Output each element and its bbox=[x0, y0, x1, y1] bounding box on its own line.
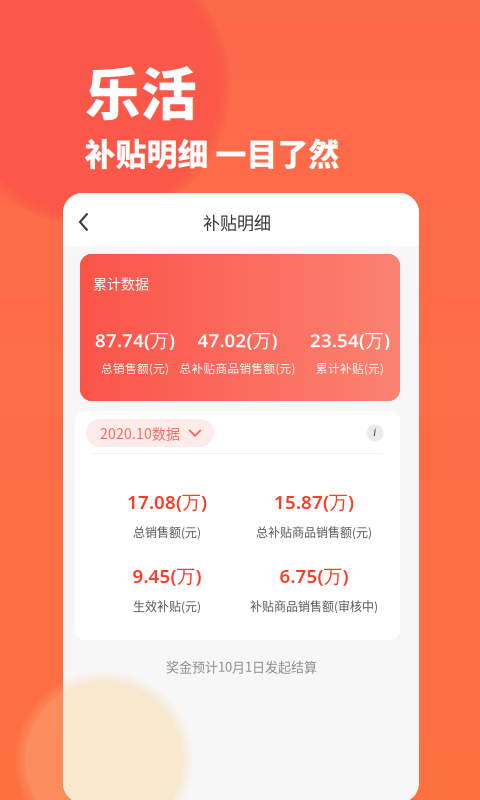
staticText: 补贴明细 bbox=[203, 210, 271, 234]
button[interactable]: More info bbox=[360, 418, 390, 448]
staticText: 总销售额(元) bbox=[101, 359, 169, 376]
staticText: 奖金预计10月1日发起结算 bbox=[166, 657, 317, 675]
staticText: 6.75(万) bbox=[279, 563, 348, 588]
staticText: 累计补贴(元) bbox=[316, 359, 384, 376]
staticText: 补贴商品销售额(审核中) bbox=[250, 597, 378, 615]
staticText: 生效补贴(元) bbox=[133, 597, 201, 615]
staticText: 总销售额(元) bbox=[133, 523, 201, 541]
staticText: 15.87(万) bbox=[274, 489, 354, 514]
button[interactable]: 2020.10数据 bbox=[86, 419, 214, 447]
staticText: 87.74(万) bbox=[95, 328, 175, 352]
staticText: 2020.10数据 bbox=[100, 423, 180, 443]
staticText: 23.54(万) bbox=[310, 328, 390, 352]
staticText: i bbox=[373, 426, 377, 439]
staticText: 累计数据 bbox=[93, 273, 149, 293]
staticText: 补贴明细 一目了然 bbox=[84, 130, 339, 174]
staticText: 乐活 bbox=[85, 50, 197, 130]
button[interactable]: Back bbox=[62, 200, 106, 244]
staticText: 17.08(万) bbox=[127, 489, 207, 514]
staticText: 总补贴商品销售额(元) bbox=[256, 523, 372, 541]
staticText: 9.45(万) bbox=[132, 563, 201, 588]
staticText: 47.02(万) bbox=[197, 328, 277, 352]
staticText: 总补贴商品销售额(元) bbox=[179, 359, 295, 376]
